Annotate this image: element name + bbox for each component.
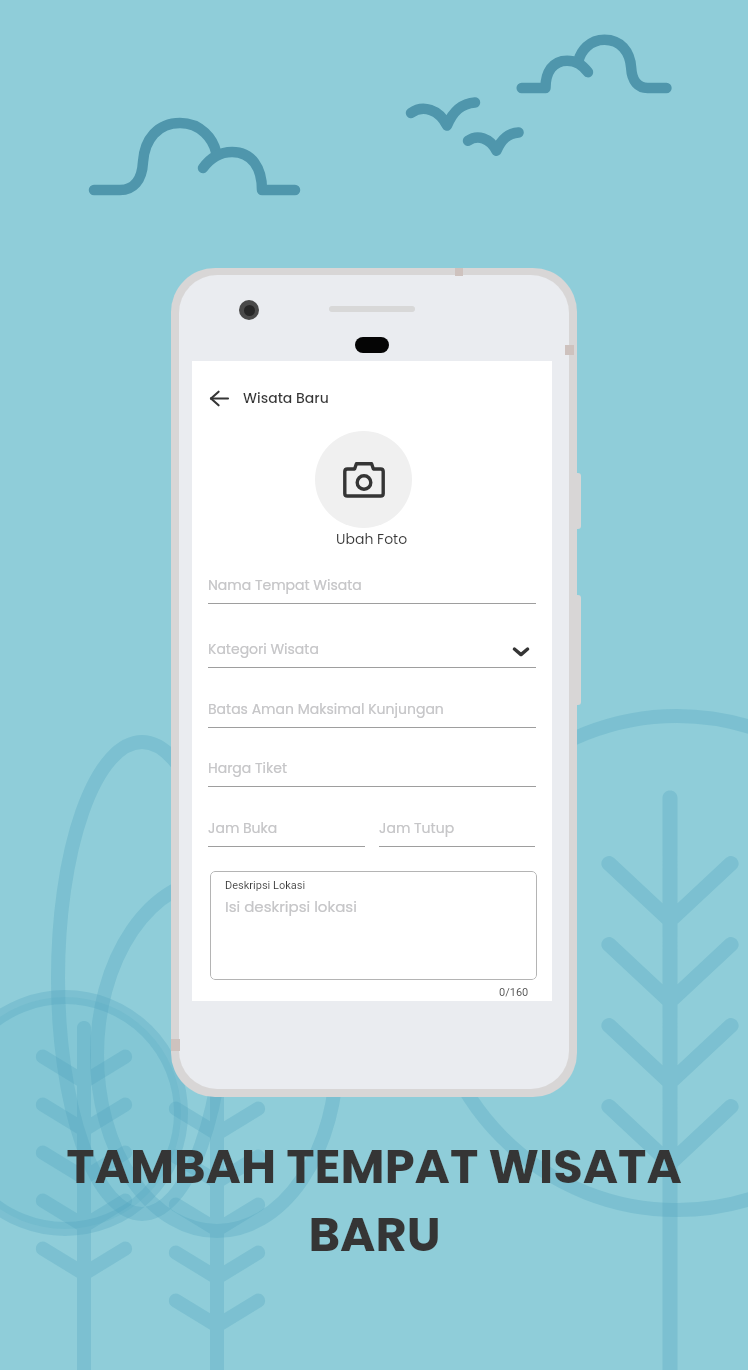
staticText: Deskripsi Lokasi xyxy=(225,879,306,892)
button[interactable]: Jam Tutup xyxy=(379,818,535,852)
staticText: Isi deskripsi lokasi xyxy=(225,896,357,917)
staticText: Jam Buka xyxy=(208,818,278,838)
button[interactable]: Deskripsi Lokasi xyxy=(210,871,537,980)
staticText: Harga Tiket xyxy=(208,758,288,778)
button[interactable]: Batas Aman Maksimal Kunjungan xyxy=(208,699,536,733)
button[interactable]: Nama Tempat Wisata xyxy=(208,575,536,609)
staticText: BARU xyxy=(308,1201,441,1268)
button[interactable]: Jam Buka xyxy=(208,818,365,852)
staticText: Wisata Baru xyxy=(243,388,329,408)
staticText: Jam Tutup xyxy=(379,818,455,838)
staticText: Nama Tempat Wisata xyxy=(208,575,362,595)
button[interactable]: Ubah Foto xyxy=(315,431,412,528)
staticText: Batas Aman Maksimal Kunjungan xyxy=(208,699,444,719)
button[interactable]: Kategori Wisata xyxy=(208,639,536,673)
button[interactable]: Harga Tiket xyxy=(208,758,536,792)
staticText: TAMBAH TEMPAT WISATA xyxy=(66,1133,682,1200)
staticText: Ubah Foto xyxy=(336,529,408,549)
staticText: Kategori Wisata xyxy=(208,639,319,659)
button[interactable]: Back xyxy=(200,382,238,414)
staticText: 0/160 xyxy=(499,986,529,999)
